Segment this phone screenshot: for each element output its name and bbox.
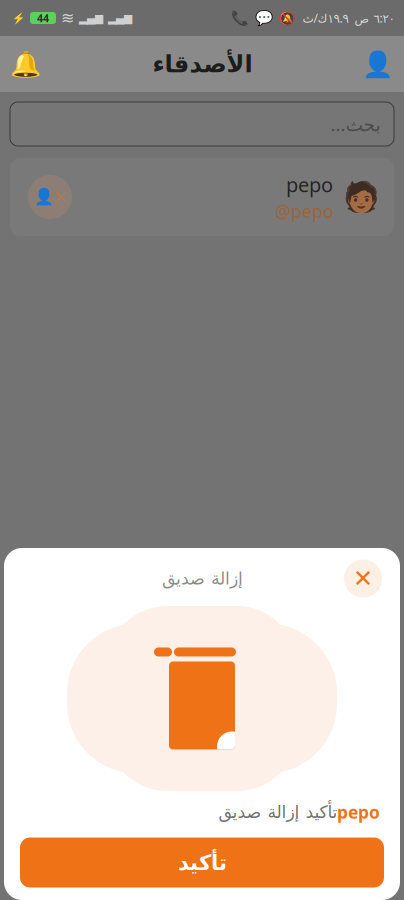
staticText: بحث... [330,112,380,136]
staticText: 👤 [362,49,394,78]
staticText: ≋ [61,9,74,27]
staticText: 💬 [255,10,273,26]
button[interactable]: تأكيد [20,837,384,887]
staticText: 🔔 [10,49,42,78]
staticText: 44 [37,11,49,25]
staticText: 🔕 [279,10,296,26]
staticText: ⚡ [12,12,25,24]
staticText: pepo [286,171,333,198]
staticText: ▂▄▆ [108,12,132,24]
button[interactable]: بحث... [10,102,394,146]
staticText: الأصدقاء [152,50,252,78]
staticText: @pepo [275,200,333,223]
staticText: ▂▄▆ [79,12,103,24]
staticText: 🧑🏾 [343,180,380,214]
staticText: تأكيد [177,850,226,875]
button[interactable]: Profile [352,36,404,92]
staticText: 📞 [231,10,249,26]
button[interactable]: 👤✕ [10,158,394,236]
staticText: pepo [337,800,380,823]
staticText: تأكيد إزالة صديق [212,802,337,822]
staticText: 👤✕ [33,188,66,206]
staticText: ✕ [353,565,373,592]
staticText: ١٩.٩ك/ث [302,10,348,26]
staticText: ٦:٢٠ ص [354,10,394,26]
button[interactable]: Close [344,559,382,597]
staticText: إزالة صديق [161,569,242,588]
button[interactable]: Notifications [0,36,52,92]
